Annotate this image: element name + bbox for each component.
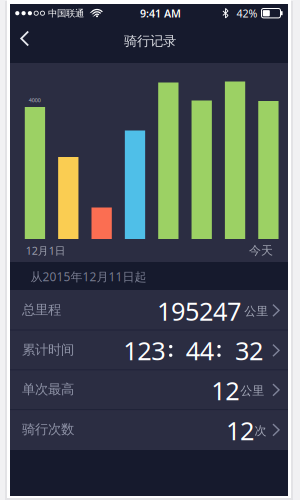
staticText: 42% xyxy=(236,6,257,20)
staticText: 12月1日 xyxy=(26,243,66,258)
staticText: 总里程 xyxy=(22,302,61,318)
staticText: 123 xyxy=(123,333,165,367)
button[interactable]: 单次最高 xyxy=(10,369,288,409)
staticText: 累计时间 xyxy=(22,342,74,358)
staticText: 12 xyxy=(211,374,239,407)
button[interactable]: 骑行次数 xyxy=(10,409,288,449)
staticText: 骑行次数 xyxy=(22,421,74,438)
button[interactable] xyxy=(10,22,48,55)
staticText: 公里 xyxy=(240,383,264,398)
staticText: 中国联通 xyxy=(48,8,84,19)
staticText: 195247 xyxy=(157,294,241,328)
staticText: 9:41 AM xyxy=(140,6,181,20)
staticText: 今天 xyxy=(249,243,273,258)
staticText: 12 xyxy=(226,414,254,447)
button[interactable]: 累计时间 xyxy=(10,330,288,370)
button[interactable]: 总里程 xyxy=(10,290,288,330)
staticText: 4000 xyxy=(29,97,41,104)
staticText: 单次最高 xyxy=(22,381,74,398)
staticText: 从2015年12月11日起 xyxy=(30,268,146,284)
staticText: 骑行记录 xyxy=(124,33,176,49)
staticText: 44 xyxy=(186,333,214,367)
staticText: 公里 xyxy=(244,304,268,319)
staticText: 32 xyxy=(235,333,263,367)
staticText: 次 xyxy=(254,423,266,438)
